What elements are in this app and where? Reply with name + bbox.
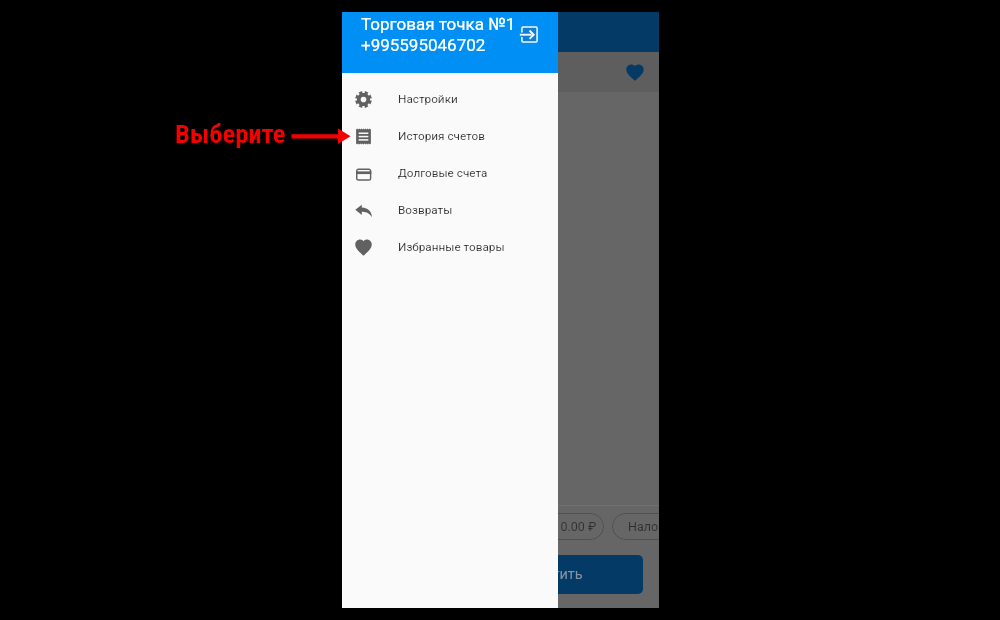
- button[interactable]: Избранные товары: [342, 229, 558, 266]
- staticText: Оплатить: [518, 566, 583, 583]
- staticText: Избранные товары: [398, 240, 505, 254]
- staticText: Выберите: [175, 118, 286, 149]
- staticText: Торговая точка №1: [361, 14, 516, 34]
- staticText: Налог: 0.00 ₽: [628, 519, 659, 534]
- button[interactable]: Выход: [519, 24, 540, 45]
- staticText: +995595046702: [361, 35, 486, 55]
- button[interactable]: Сумма: 0.00 ₽: [499, 513, 604, 540]
- staticText: Возвраты: [398, 203, 453, 217]
- button[interactable]: Избранное: [626, 64, 644, 81]
- button[interactable]: Возвраты: [342, 192, 558, 229]
- button[interactable]: Налог: 0.00 ₽: [612, 513, 659, 540]
- staticText: История счетов: [398, 129, 485, 143]
- button[interactable]: История счетов: [342, 118, 558, 155]
- button[interactable]: Настройки: [342, 81, 558, 118]
- button[interactable]: Оплатить: [357, 555, 643, 594]
- staticText: Долговые счета: [398, 166, 488, 180]
- staticText: Сумма: 0.00 ₽: [515, 519, 597, 534]
- button[interactable]: Долговые счета: [342, 155, 558, 192]
- staticText: Настройки: [398, 92, 458, 106]
